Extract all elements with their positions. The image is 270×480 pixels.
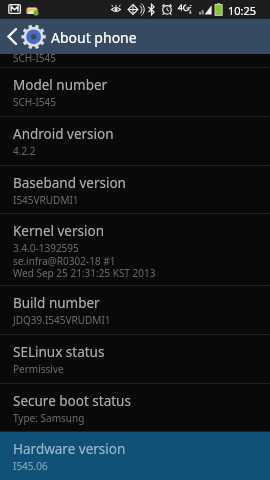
button[interactable]: SCH-I545 [0,54,270,68]
staticText: About phone [51,28,137,47]
staticText: SCH-I545 [13,95,56,109]
staticText: se.infra@R0302-18 #1 [13,254,116,268]
button[interactable]: Build number [0,286,270,335]
staticText: Hardware version [13,440,126,458]
button[interactable]: Navigate up to Settings [0,19,48,54]
staticText: Type: Samsung [13,411,85,425]
staticText: Android version [13,125,114,143]
staticText: Model number [13,76,108,94]
staticText: Kernel version [13,222,105,240]
staticText: SCH-I545 [13,51,56,65]
staticText: I545VRUDMI1 [13,193,79,207]
staticText: I545.06 [13,459,48,473]
staticText: Baseband version [13,174,126,192]
button[interactable]: Secure boot status [0,384,270,432]
staticText: 3.4.0-1392595 [13,241,79,255]
staticText: Permissive [13,362,64,376]
button[interactable]: Baseband version [0,166,270,214]
button[interactable]: Model number [0,68,270,117]
staticText: 10:25 [228,3,257,18]
button[interactable]: Kernel version [0,214,270,286]
button[interactable]: Hardware version [0,432,270,480]
button[interactable]: SELinux status [0,335,270,384]
staticText: JDQ39.I545VRUDMI1 [13,313,111,327]
staticText: 4.2.2 [13,144,36,158]
staticText: Secure boot status [13,392,131,410]
staticText: Build number [13,294,100,312]
button[interactable]: Android version [0,117,270,166]
staticText: SELinux status [13,343,105,361]
staticText: Wed Sep 25 21:31:25 KST 2013 [13,266,156,280]
